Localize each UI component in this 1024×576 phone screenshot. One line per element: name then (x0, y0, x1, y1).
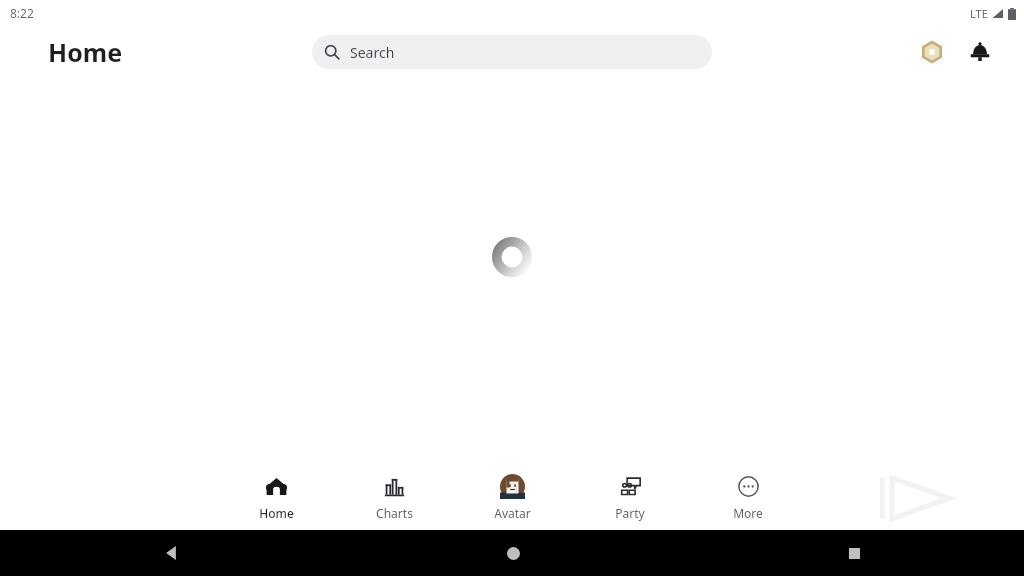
button[interactable]: Back (151, 533, 191, 573)
button[interactable]: Home (493, 533, 533, 573)
staticText: Search (350, 43, 395, 62)
button[interactable]: Search (312, 35, 712, 69)
staticText: LTE (970, 6, 988, 21)
button[interactable]: Party (571, 464, 689, 530)
staticText: Home (259, 505, 294, 521)
staticText: More (733, 505, 763, 521)
button[interactable]: Recent apps (834, 533, 874, 573)
staticText: Charts (376, 505, 413, 521)
button[interactable]: More (689, 464, 807, 530)
button[interactable]: Notifications (962, 34, 998, 70)
button[interactable]: Avatar (453, 464, 571, 530)
button[interactable]: Charts (335, 464, 453, 530)
staticText: Avatar (494, 505, 531, 521)
button[interactable]: Home (217, 464, 335, 530)
button[interactable]: Robux balance (914, 34, 950, 70)
staticText: 8:22 (10, 5, 34, 21)
staticText: Party (615, 505, 645, 521)
staticText: Home (48, 35, 123, 69)
